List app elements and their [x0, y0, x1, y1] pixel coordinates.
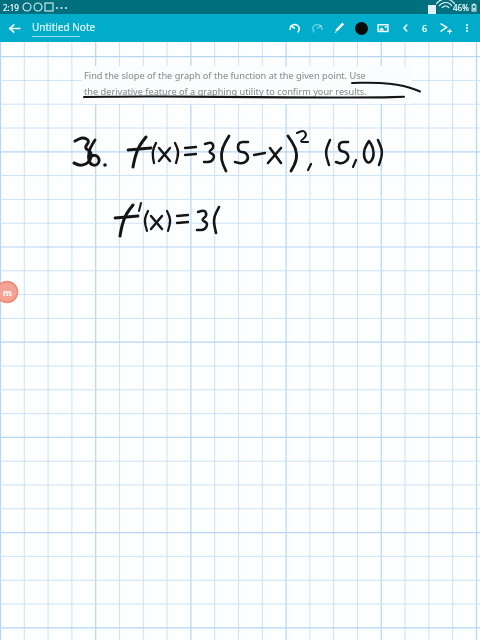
button[interactable]: Colour	[350, 14, 372, 42]
button[interactable]: App badge	[0, 284, 15, 299]
button[interactable]: Insert image	[372, 14, 394, 42]
button[interactable]: Previous page	[394, 14, 416, 42]
staticText: 6	[422, 22, 428, 34]
staticText: 46%	[453, 2, 469, 13]
staticText: 2:19	[3, 2, 19, 13]
button[interactable]: 6	[416, 14, 434, 42]
button[interactable]: More options	[456, 14, 478, 42]
staticText: the derivative feature of a graphing uti…	[84, 85, 367, 98]
button[interactable]: Pen	[328, 14, 350, 42]
staticText: Find the slope of the graph of the funct…	[84, 69, 366, 82]
button[interactable]: Redo	[306, 14, 328, 42]
button[interactable]: Untitled Note	[32, 20, 96, 37]
button[interactable]: Undo	[284, 14, 306, 42]
button[interactable]: Back	[0, 14, 28, 42]
button[interactable]: Add page	[434, 14, 456, 42]
staticText: m	[3, 286, 12, 298]
staticText: Untitled Note	[32, 20, 96, 34]
